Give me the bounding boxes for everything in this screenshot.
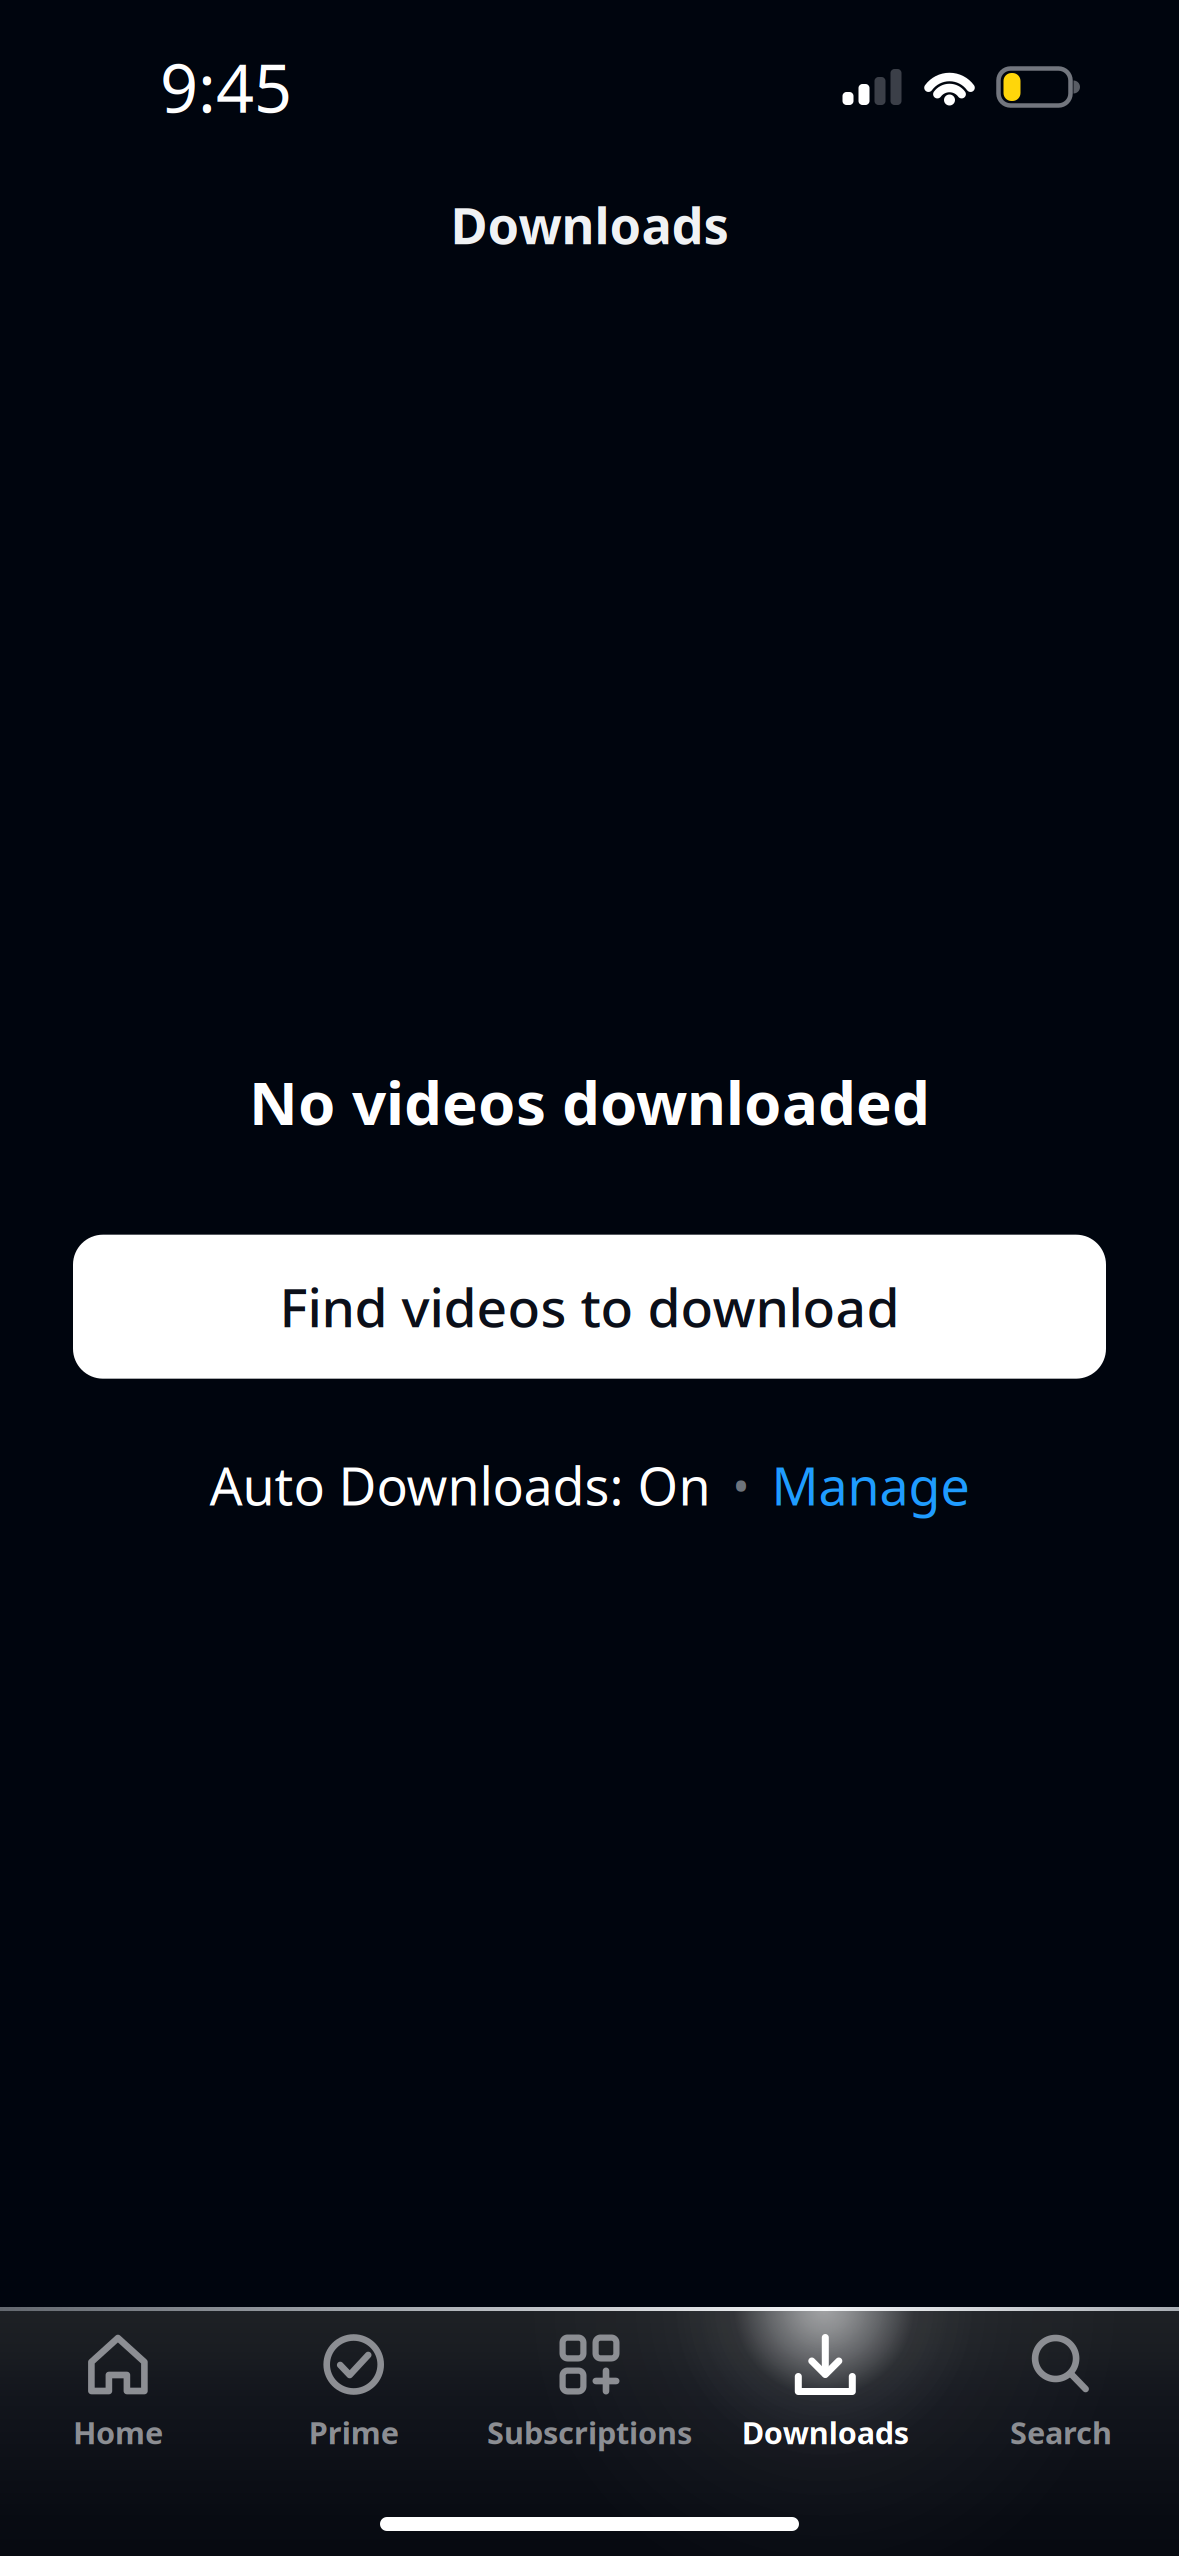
staticText: Downloads xyxy=(450,191,728,258)
button[interactable]: Search xyxy=(943,2307,1179,2556)
staticText: Home xyxy=(73,2412,163,2453)
staticText: Subscriptions xyxy=(487,2412,692,2453)
button[interactable]: Find videos to download xyxy=(73,1235,1106,1379)
staticText: Prime xyxy=(309,2412,399,2453)
button[interactable]: Prime xyxy=(236,2307,472,2556)
staticText: Find videos to download xyxy=(279,1271,899,1342)
staticText: Manage xyxy=(771,1451,969,1520)
staticText: No videos downloaded xyxy=(249,1062,930,1142)
button[interactable]: Manage xyxy=(771,1451,969,1520)
button[interactable]: Home xyxy=(0,2307,236,2556)
button[interactable]: Downloads xyxy=(707,2307,943,2556)
staticText: Auto Downloads: On xyxy=(209,1451,710,1520)
staticText: Downloads xyxy=(742,2412,909,2453)
staticText: 9:45 xyxy=(160,43,292,131)
staticText: Search xyxy=(1010,2412,1112,2453)
button[interactable]: Subscriptions xyxy=(472,2307,707,2556)
staticText: • xyxy=(732,1455,749,1515)
